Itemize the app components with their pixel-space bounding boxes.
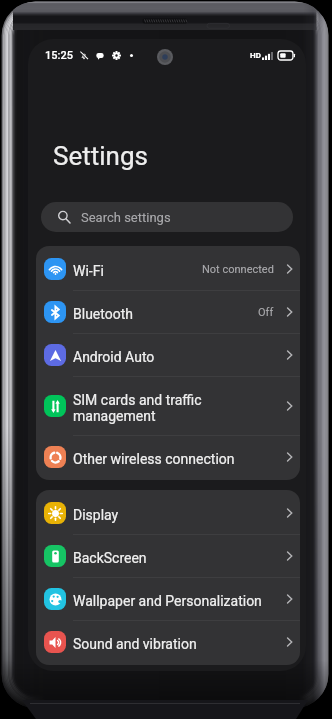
button[interactable]: Android Auto: [36, 334, 300, 376]
button[interactable]: Sound and vibration: [36, 621, 300, 663]
button[interactable]: BackScreen: [36, 535, 300, 577]
staticText: SIM cards and traffic management: [73, 392, 280, 424]
staticText: Search settings: [81, 210, 171, 225]
staticText: Wallpaper and Personalization: [73, 593, 280, 609]
staticText: Sound and vibration: [73, 636, 280, 652]
staticText: Settings: [53, 141, 148, 171]
button[interactable]: Wallpaper and Personalization: [36, 578, 300, 620]
button[interactable]: Search settings: [41, 202, 293, 232]
staticText: Not connected: [202, 263, 274, 276]
staticText: HD: [250, 51, 261, 60]
staticText: 15:25: [45, 49, 73, 62]
staticText: Display: [73, 507, 280, 523]
button[interactable]: SIM cards and traffic management: [36, 377, 300, 435]
button[interactable]: Display: [36, 492, 300, 534]
button[interactable]: Other wireless connection: [36, 436, 300, 478]
staticText: BackScreen: [73, 550, 280, 566]
button[interactable]: Bluetooth: [36, 291, 300, 333]
staticText: Bluetooth: [73, 306, 252, 322]
staticText: Wi-Fi: [73, 263, 196, 279]
staticText: Android Auto: [73, 349, 280, 365]
button[interactable]: Wi-Fi: [36, 248, 300, 290]
staticText: Off: [258, 306, 274, 319]
staticText: Other wireless connection: [73, 451, 280, 467]
